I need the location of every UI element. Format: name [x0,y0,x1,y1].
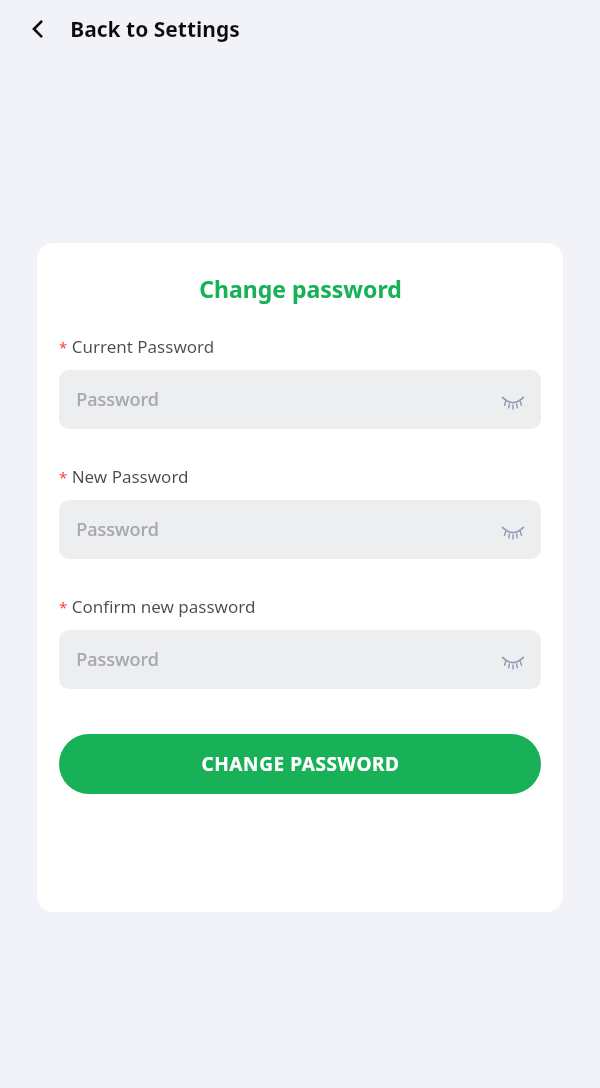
button[interactable]: Show password [497,384,529,416]
staticText: Password [76,647,159,672]
button[interactable]: CHANGE PASSWORD [59,734,541,794]
button[interactable]: Password [59,630,541,689]
button[interactable]: Show password [497,644,529,676]
button[interactable]: Password [59,500,541,559]
button[interactable]: Show password [497,514,529,546]
staticText: Password [76,517,159,542]
staticText: * New Password [59,465,189,488]
button[interactable]: Password [59,370,541,429]
staticText: Back to Settings [70,15,240,44]
staticText: Password [76,387,159,412]
button[interactable]: Back [0,0,600,58]
staticText: * Current Password [59,335,215,358]
staticText: CHANGE PASSWORD [201,751,400,777]
staticText: Change password [199,273,402,304]
other: Back [26,17,50,41]
staticText: * Confirm new password [59,595,256,618]
